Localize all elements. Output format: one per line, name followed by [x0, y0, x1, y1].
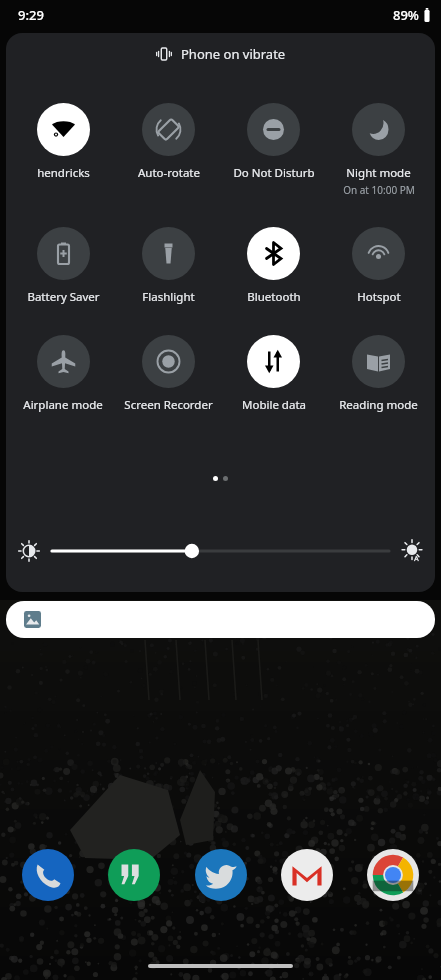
button[interactable]: Flashlight	[116, 227, 221, 305]
staticText: Auto-rotate	[138, 165, 200, 181]
button[interactable]: Twitter	[195, 849, 247, 901]
button[interactable]: Auto-rotate	[116, 103, 221, 181]
button[interactable]	[6, 601, 435, 638]
button[interactable]: Gmail	[281, 849, 333, 901]
staticText: Phone on vibrate	[181, 45, 286, 63]
staticText: Flashlight	[142, 289, 195, 305]
button[interactable]: Airplane mode	[10, 335, 116, 413]
button[interactable]: Hotspot	[326, 227, 431, 305]
staticText: Mobile data	[242, 397, 306, 413]
button[interactable]: Battery Saver	[10, 227, 116, 305]
staticText: Reading mode	[339, 397, 418, 413]
button[interactable]: Screen Recorder	[116, 335, 221, 413]
button[interactable]: Reading mode	[326, 335, 431, 413]
button[interactable]: Do Not Disturb	[221, 103, 326, 181]
staticText: 9:29	[18, 6, 44, 24]
staticText: 89%	[393, 6, 419, 24]
staticText: Bluetooth	[247, 289, 301, 305]
staticText: Battery Saver	[27, 289, 100, 305]
staticText: Night mode	[346, 165, 411, 181]
staticText: Screen Recorder	[124, 397, 213, 413]
staticText: Airplane mode	[23, 397, 103, 413]
staticText: Hotspot	[357, 289, 401, 305]
button[interactable]: Night mode	[326, 103, 431, 197]
staticText: On at 10:00 PM	[343, 183, 415, 197]
button[interactable]: Bluetooth	[221, 227, 326, 305]
staticText: hendricks	[37, 165, 90, 181]
button[interactable]: Brightness	[52, 540, 389, 562]
button[interactable]: Hangouts	[108, 849, 160, 901]
staticText: Do Not Disturb	[233, 165, 315, 181]
button[interactable]: Mobile data	[221, 335, 326, 413]
button[interactable]: hendricks	[10, 103, 116, 181]
button[interactable]: Phone	[22, 849, 74, 901]
button[interactable]: Chrome Beta	[367, 849, 419, 901]
